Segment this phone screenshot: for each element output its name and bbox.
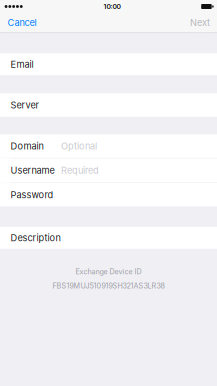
staticText: Exchange Device ID <box>75 267 141 276</box>
button[interactable]: Next <box>187 13 213 32</box>
button[interactable]: Email <box>0 53 217 75</box>
staticText: Username <box>10 165 54 176</box>
staticText: Next <box>190 17 210 28</box>
staticText: 10:00 <box>103 2 120 11</box>
button[interactable]: Domain <box>0 134 217 158</box>
staticText: Domain <box>10 140 43 152</box>
staticText: Cancel <box>7 17 36 28</box>
button[interactable]: Description <box>0 227 217 249</box>
button[interactable]: Server <box>0 93 217 117</box>
button[interactable]: Password <box>0 183 217 207</box>
staticText: Optional <box>61 140 97 152</box>
staticText: FBS19MUJ510919SH321AS3LR38 <box>52 281 164 290</box>
staticText: Server <box>10 99 38 111</box>
button[interactable]: Username <box>0 159 217 182</box>
staticText: Password <box>10 189 53 200</box>
staticText: Required <box>61 165 99 176</box>
button[interactable]: Cancel <box>5 13 39 32</box>
staticText: Email <box>10 59 33 70</box>
staticText: Description <box>10 232 60 243</box>
